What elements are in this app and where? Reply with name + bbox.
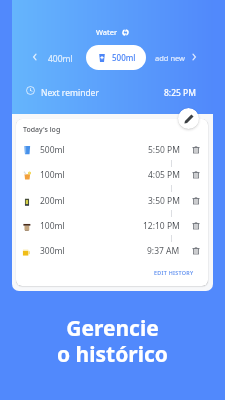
- staticText: 4:05 PM: [148, 169, 180, 181]
- staticText: 400ml: [48, 53, 73, 65]
- staticText: 8:25 PM: [164, 87, 196, 99]
- staticText: Water: [96, 27, 118, 37]
- other: Delete: [191, 196, 201, 206]
- button[interactable]: 100ml: [16, 215, 208, 237]
- other: Delete: [191, 170, 201, 180]
- staticText: 200ml: [40, 195, 65, 207]
- other: Delete: [191, 246, 201, 256]
- staticText: Next reminder: [41, 87, 99, 99]
- button[interactable]: 300ml: [16, 240, 208, 262]
- staticText: 500ml: [112, 52, 136, 63]
- other: Previous: [30, 52, 40, 62]
- staticText: 300ml: [40, 245, 65, 257]
- button[interactable]: Previous: [29, 51, 41, 63]
- staticText: 3:50 PM: [148, 195, 180, 207]
- staticText: Today's log: [23, 125, 61, 135]
- button[interactable]: EDIT HISTORY: [151, 267, 197, 278]
- staticText: 12:10 PM: [143, 220, 180, 232]
- button[interactable]: Edit: [178, 108, 199, 129]
- button[interactable]: 100ml: [16, 164, 208, 186]
- staticText: 500ml: [40, 144, 65, 156]
- button[interactable]: 200ml: [16, 190, 208, 212]
- button[interactable]: add new: [155, 53, 185, 63]
- other: Sync: [121, 28, 130, 37]
- staticText: 5:50 PM: [148, 144, 180, 156]
- staticText: EDIT HISTORY: [154, 269, 194, 276]
- other: Next: [189, 52, 199, 62]
- staticText: Gerencie o histórico: [57, 314, 168, 368]
- button[interactable]: 500ml: [86, 45, 146, 70]
- button[interactable]: Next: [188, 51, 200, 63]
- button[interactable]: 500ml: [16, 139, 208, 161]
- staticText: 100ml: [40, 220, 65, 232]
- other: Delete: [191, 221, 201, 231]
- staticText: 100ml: [40, 169, 65, 181]
- other: Delete: [191, 145, 201, 155]
- staticText: 9:37 AM: [147, 245, 180, 257]
